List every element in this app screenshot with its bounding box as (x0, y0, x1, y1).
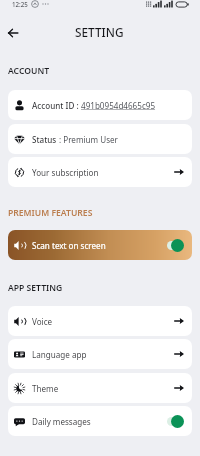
button[interactable]: Language app (8, 339, 192, 369)
button[interactable]: Voice (8, 306, 192, 336)
staticText: Daily messages (32, 416, 91, 427)
other: Open (174, 349, 184, 359)
staticText: Voice (32, 316, 53, 327)
button[interactable]: Toggle (167, 239, 184, 252)
other: Open (174, 316, 184, 326)
staticText: : Premium User (59, 134, 118, 145)
other: Open (174, 383, 184, 393)
staticText: PREMIUM FEATURES (8, 207, 93, 219)
staticText: ACCOUNT (8, 65, 50, 77)
staticText: Scan text on screen (32, 240, 106, 251)
staticText: Theme (32, 383, 59, 394)
button[interactable]: Scan text on screen (8, 230, 192, 260)
button[interactable]: Theme (8, 373, 192, 403)
staticText: Account ID : (32, 100, 81, 111)
button[interactable]: Status (8, 124, 192, 154)
staticText: SETTING (75, 24, 124, 40)
staticText: 12:25 (12, 0, 28, 8)
staticText: APP SETTING (8, 282, 63, 294)
button[interactable]: Toggle (167, 415, 184, 428)
staticText: Language app (32, 349, 87, 360)
button[interactable]: Daily messages (8, 406, 192, 436)
staticText: Your subscription (32, 167, 99, 178)
staticText: 491b0954d4665c95 (81, 100, 156, 111)
button[interactable]: Back (3, 23, 22, 42)
button[interactable]: Your subscription (8, 157, 192, 187)
other: Open (174, 167, 184, 177)
button[interactable]: Account ID : (8, 90, 192, 120)
staticText: Status (32, 134, 59, 145)
